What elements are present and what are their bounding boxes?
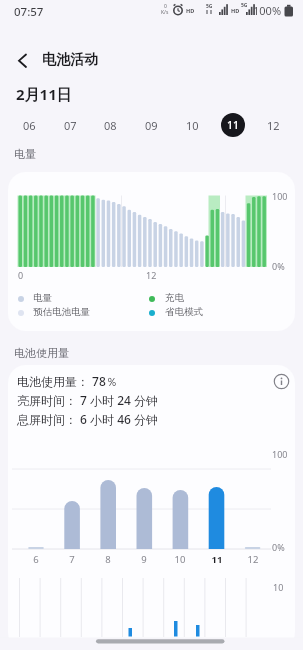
staticText: 7 <box>62 553 82 566</box>
staticText: 0% <box>272 260 285 272</box>
staticText: 10 <box>170 553 190 566</box>
button[interactable]: 07 <box>56 113 84 137</box>
staticText: 5G <box>241 2 248 9</box>
staticText: 09 <box>145 118 158 133</box>
staticText: 亮屏时间： 7 小时 24 分钟 <box>17 392 159 408</box>
button[interactable]: 10 <box>178 113 206 137</box>
staticText: 8 <box>98 553 118 566</box>
staticText: 电量 <box>33 292 52 304</box>
staticText: 省电模式 <box>165 306 203 318</box>
button[interactable]: 12 <box>259 113 287 137</box>
button[interactable]: 11 <box>221 113 245 137</box>
staticText: 预估电池电量 <box>33 306 90 318</box>
staticText: 12 <box>146 269 157 281</box>
staticText: 11 <box>207 553 227 566</box>
button[interactable]: 09 <box>137 113 165 137</box>
staticText: 11 <box>227 118 240 132</box>
staticText: K/s <box>161 9 169 16</box>
staticText: 10 <box>273 581 284 593</box>
staticText: 电池使用量： 78％ <box>17 373 118 389</box>
staticText: 9 <box>134 553 154 566</box>
staticText: HD <box>231 7 240 14</box>
staticText: 0% <box>272 541 285 553</box>
staticText: 100 <box>272 190 288 202</box>
staticText: 6 <box>26 553 46 566</box>
staticText: HD <box>186 7 195 14</box>
staticText: 07 <box>64 118 77 133</box>
staticText: 12 <box>243 553 263 566</box>
staticText: 07:57 <box>14 4 44 20</box>
staticText: 10 <box>186 118 199 133</box>
staticText: 电量 <box>14 147 36 161</box>
staticText: 100% <box>253 3 282 18</box>
button[interactable]: 08 <box>96 113 124 137</box>
staticText: 电池活动 <box>42 51 98 69</box>
button[interactable] <box>8 46 38 76</box>
staticText: 5G <box>206 3 213 10</box>
staticText: 0 <box>164 3 167 10</box>
staticText: 06 <box>23 118 36 133</box>
staticText: 充电 <box>165 292 184 304</box>
staticText: 0 <box>18 269 24 281</box>
staticText: 100 <box>272 448 288 460</box>
button[interactable] <box>273 373 290 390</box>
staticText: 息屏时间： 6 小时 46 分钟 <box>17 411 159 427</box>
button[interactable]: 06 <box>15 113 43 137</box>
staticText: 08 <box>104 118 117 133</box>
staticText: 2月11日 <box>16 84 72 104</box>
staticText: 12 <box>267 118 280 133</box>
staticText: 电池使用量 <box>14 346 69 360</box>
